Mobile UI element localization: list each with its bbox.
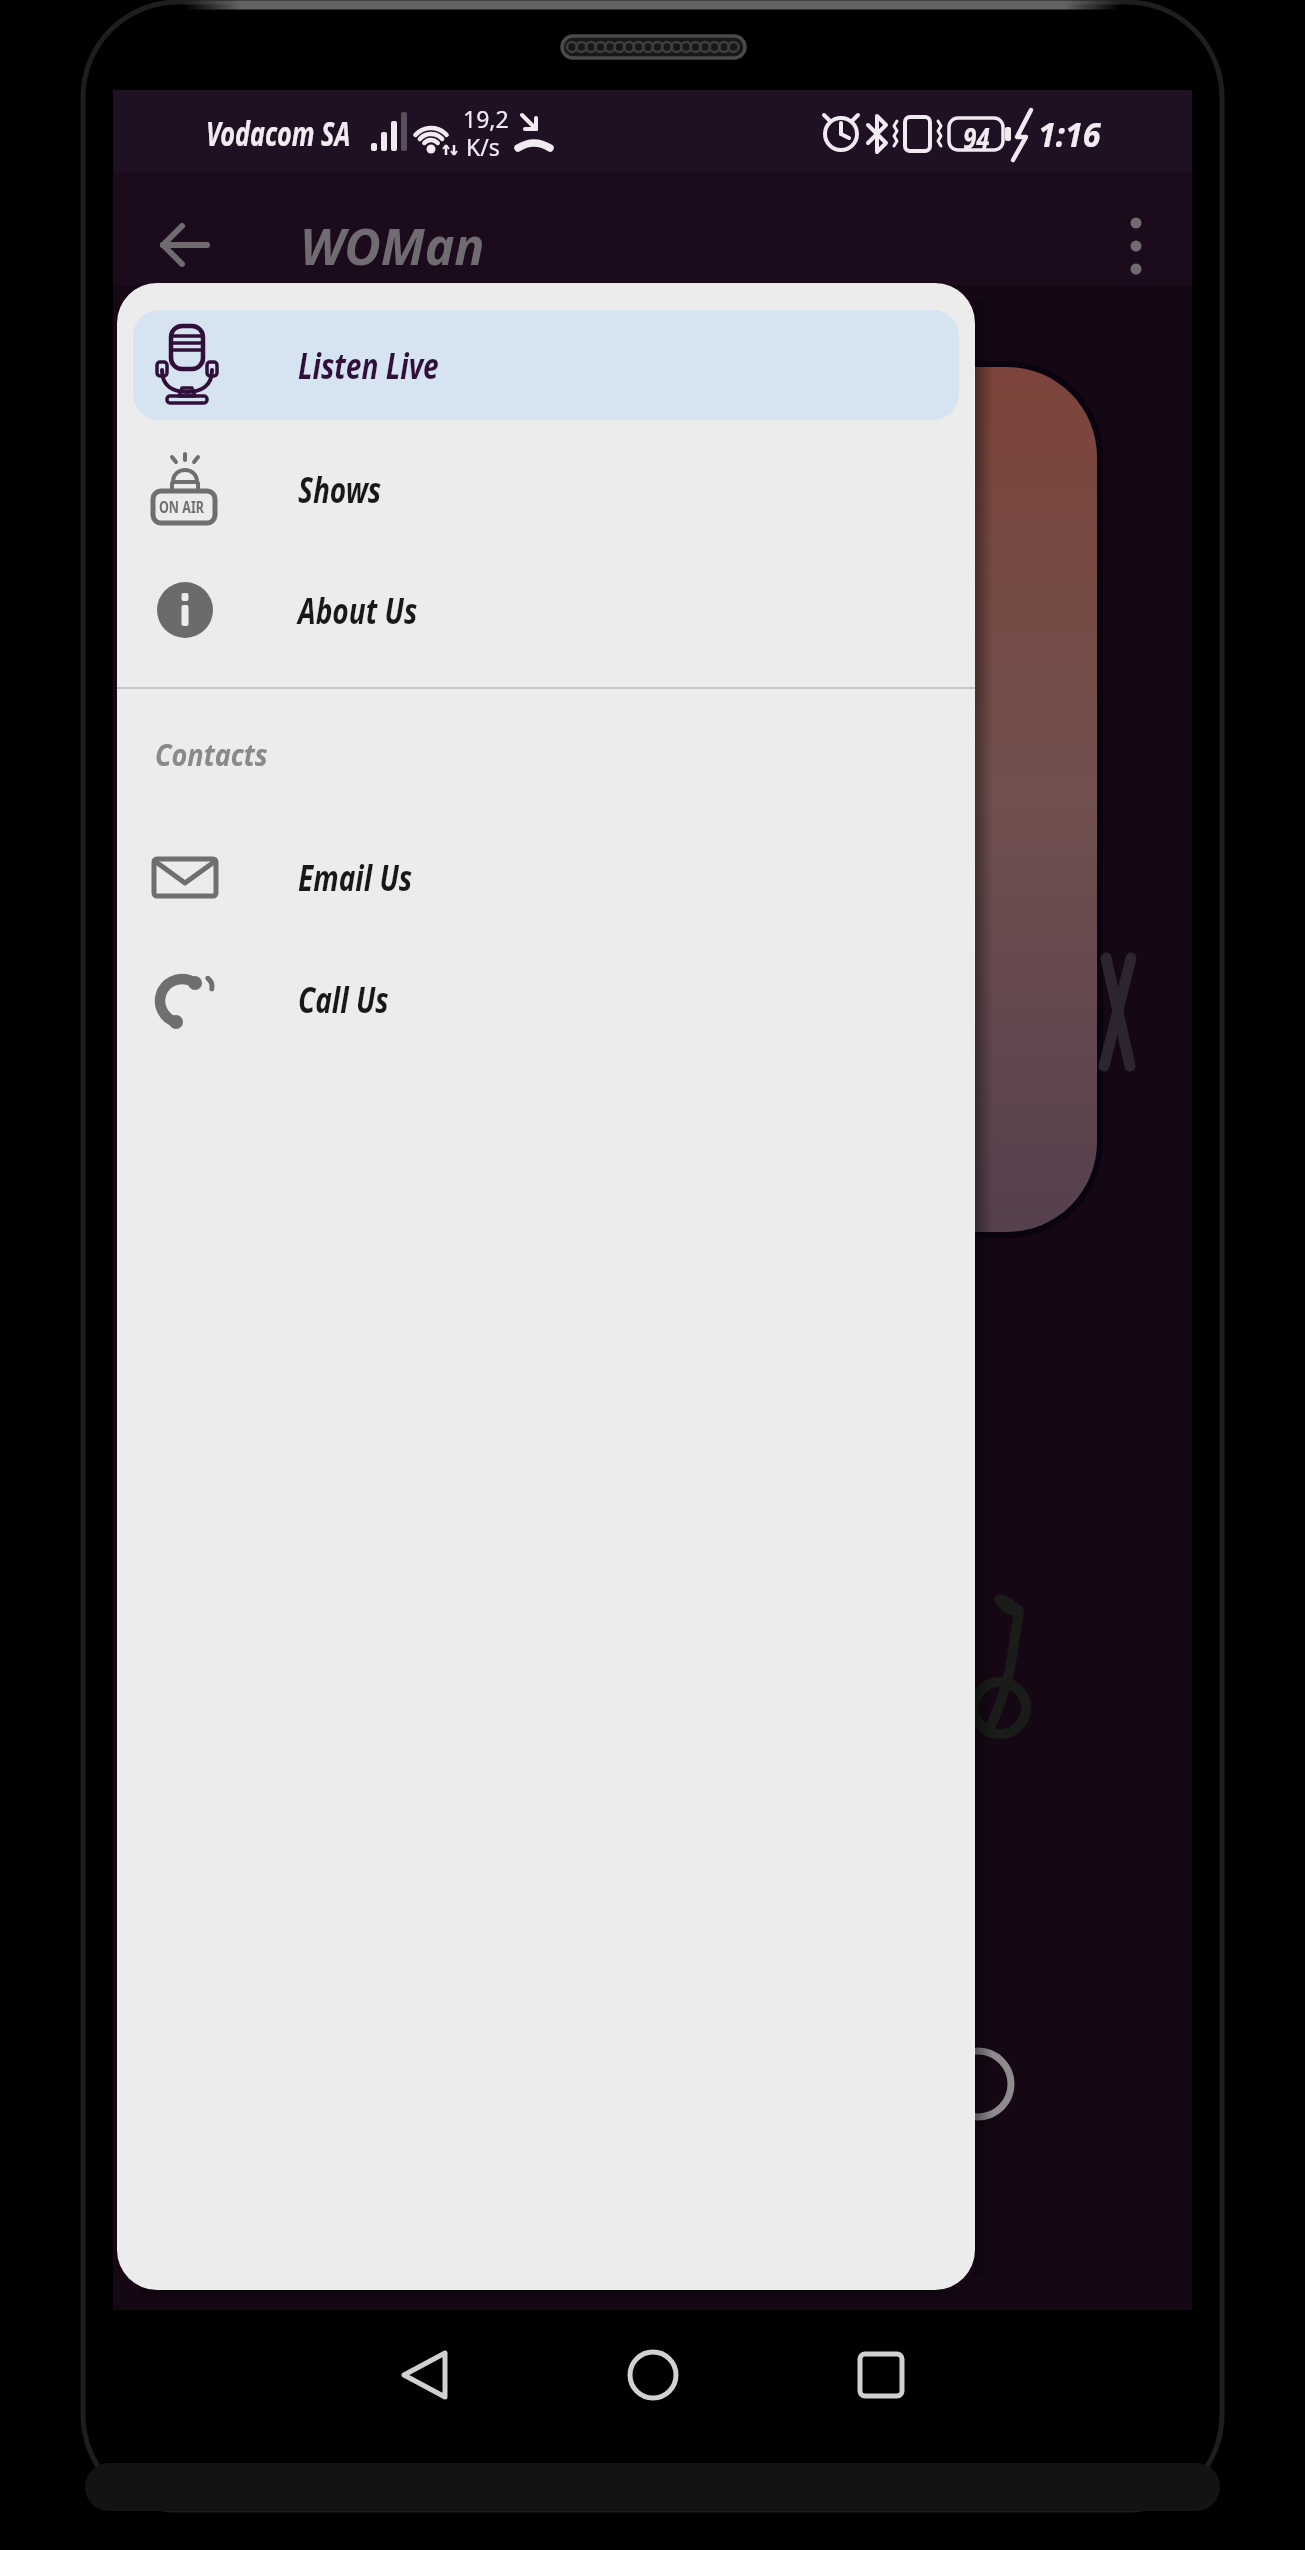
button[interactable]: Listen Live (133, 310, 959, 420)
button[interactable] (615, 2338, 691, 2412)
staticText: WOMan (300, 212, 485, 280)
staticText: Email Us (298, 853, 413, 902)
button[interactable] (386, 2338, 462, 2412)
button[interactable]: Email Us (117, 817, 975, 937)
button[interactable] (148, 212, 224, 278)
button[interactable] (1103, 210, 1169, 282)
staticText: Call Us (298, 975, 389, 1024)
staticText: K/s (466, 131, 500, 161)
staticText: 94 (963, 119, 990, 150)
staticText: 19,2 (463, 103, 509, 133)
staticText: Contacts (155, 734, 268, 775)
staticText: About Us (298, 586, 417, 635)
staticText: ON AIR (159, 496, 204, 518)
staticText: 1:16 (1038, 111, 1101, 157)
button[interactable]: About Us (117, 550, 975, 670)
staticText: Shows (298, 465, 381, 514)
staticText: Vodacom SA (206, 110, 350, 156)
staticText: Listen Live (298, 341, 439, 390)
button[interactable]: Call Us (117, 939, 975, 1059)
button[interactable]: ON AIR (117, 429, 975, 549)
button[interactable] (843, 2338, 919, 2412)
